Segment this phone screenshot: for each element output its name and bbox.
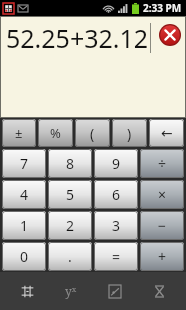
staticText: ± (15, 124, 23, 142)
button[interactable]: 3 (94, 211, 138, 240)
staticText: = (112, 247, 121, 266)
button[interactable]: 8 (48, 149, 92, 178)
button[interactable]: Graph (98, 275, 132, 307)
staticText: 2:33 PM (143, 1, 182, 15)
button[interactable]: − (140, 211, 184, 240)
button[interactable]: + (140, 242, 184, 271)
staticText: 8 (66, 154, 75, 173)
button[interactable]: % (38, 119, 73, 147)
button[interactable]: 5 (48, 180, 92, 209)
button[interactable]: . (48, 242, 92, 271)
staticText: 2 (66, 216, 75, 235)
button[interactable]: Clear (159, 24, 181, 46)
staticText: 52.25+32.12 (6, 21, 149, 55)
staticText: . (68, 247, 72, 266)
staticText: 3 (112, 216, 121, 235)
staticText: − (158, 216, 167, 235)
staticText: 6 (112, 185, 121, 204)
staticText: ( (90, 124, 95, 143)
button[interactable]: × (140, 180, 184, 209)
button[interactable]: 2 (48, 211, 92, 240)
button[interactable]: ÷ (140, 149, 184, 178)
staticText: ÷ (158, 154, 167, 173)
staticText: × (158, 185, 167, 204)
button[interactable]: History (142, 275, 176, 307)
staticText: 0 (20, 247, 29, 266)
staticText: 1 (20, 216, 29, 235)
button[interactable]: = (94, 242, 138, 271)
button[interactable]: 7 (2, 149, 46, 178)
button[interactable]: Matrix (10, 275, 44, 307)
staticText: 9 (112, 154, 121, 173)
button[interactable]: 6 (94, 180, 138, 209)
button[interactable]: ← (149, 119, 184, 147)
staticText: % (50, 124, 61, 142)
staticText: ← (161, 125, 173, 141)
button[interactable]: ) (112, 119, 147, 147)
button[interactable]: 0 (2, 242, 46, 271)
staticText: ) (127, 124, 132, 143)
staticText: + (158, 247, 167, 266)
staticText: 7 (20, 154, 29, 173)
button[interactable]: 9 (94, 149, 138, 178)
staticText: yˣ (65, 283, 77, 299)
button[interactable]: ( (75, 119, 110, 147)
button[interactable]: ± (2, 119, 36, 147)
button[interactable]: 1 (2, 211, 46, 240)
button[interactable]: 4 (2, 180, 46, 209)
staticText: 5 (66, 185, 75, 204)
staticText: 4 (20, 185, 29, 204)
button[interactable]: Power (54, 275, 88, 307)
